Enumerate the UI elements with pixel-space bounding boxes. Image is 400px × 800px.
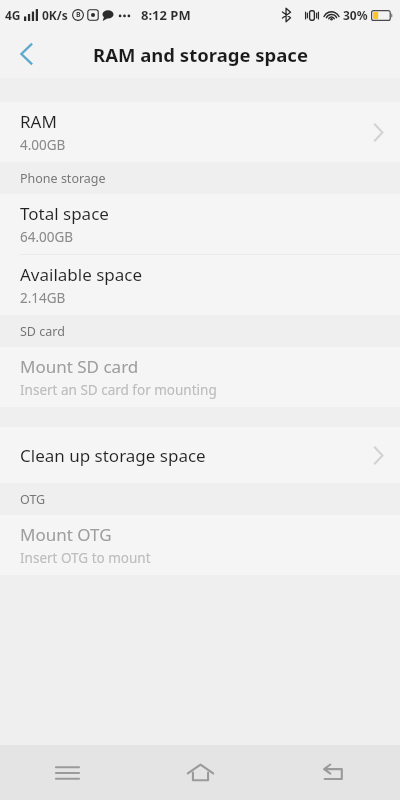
- staticText: Mount OTG: [20, 523, 112, 546]
- staticText: Total space: [20, 202, 109, 225]
- button[interactable]: Mount OTG: [0, 515, 400, 575]
- staticText: RAM: [20, 110, 57, 133]
- staticText: Mount SD card: [20, 355, 139, 378]
- staticText: SD card: [20, 323, 65, 340]
- staticText: 4G: [5, 7, 21, 23]
- staticText: 64.00GB: [20, 228, 74, 246]
- staticText: Insert an SD card for mounting: [20, 381, 217, 399]
- button[interactable]: Mount SD card: [0, 347, 400, 407]
- staticText: Clean up storage space: [20, 444, 373, 467]
- button[interactable]: RAM: [0, 102, 400, 162]
- staticText: 0K/s: [42, 7, 68, 23]
- staticText: 8:12 PM: [141, 6, 191, 24]
- staticText: RAM and storage space: [93, 42, 308, 67]
- staticText: 2.14GB: [20, 289, 66, 307]
- button[interactable]: Recent apps: [0, 745, 134, 800]
- button[interactable]: Back: [0, 30, 52, 78]
- staticText: B: [76, 10, 81, 20]
- button[interactable]: Back: [267, 745, 400, 800]
- staticText: OTG: [20, 491, 46, 508]
- button[interactable]: Home: [134, 745, 267, 800]
- button[interactable]: Clean up storage space: [0, 427, 400, 483]
- staticText: 4.00GB: [20, 136, 66, 154]
- staticText: Available space: [20, 263, 143, 286]
- staticText: Insert OTG to mount: [20, 549, 151, 567]
- button[interactable]: Available space: [0, 255, 400, 315]
- button[interactable]: Total space: [0, 194, 400, 254]
- staticText: Phone storage: [20, 170, 106, 187]
- staticText: 30%: [343, 7, 368, 23]
